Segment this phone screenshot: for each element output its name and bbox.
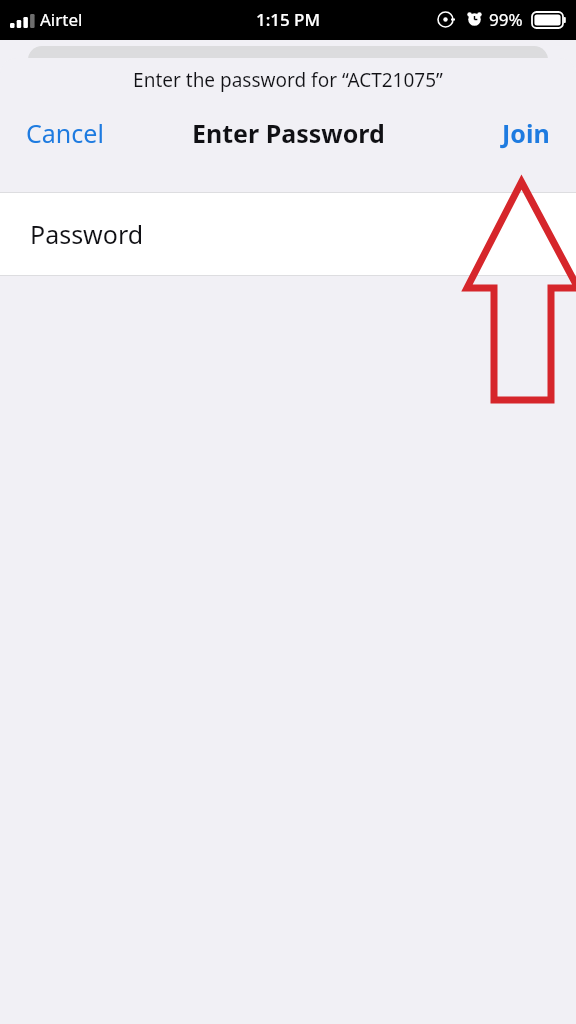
staticText: Cancel (26, 116, 104, 150)
staticText: Airtel (40, 8, 83, 31)
button[interactable]: Password (0, 193, 576, 275)
other: Arrow pointing to Join (0, 0, 576, 1024)
button[interactable]: Cancel (0, 106, 130, 160)
staticText: Join (502, 116, 550, 150)
button[interactable]: Join (476, 106, 576, 160)
staticText: Password (30, 217, 144, 251)
staticText: Enter Password (192, 116, 385, 150)
staticText: 99% (489, 8, 523, 31)
staticText: Enter the password for “ACT21075” (133, 67, 443, 93)
staticText: 1:15 PM (0, 8, 576, 31)
